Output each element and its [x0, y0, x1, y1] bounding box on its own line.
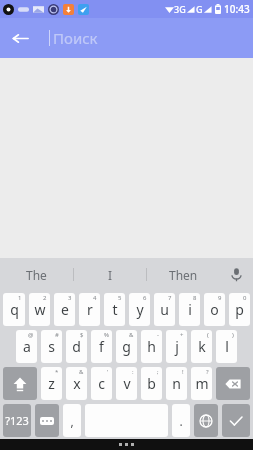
staticText: u [160, 300, 169, 319]
button[interactable]: + [166, 330, 187, 363]
button[interactable]: Change language [194, 404, 218, 437]
button[interactable]: ( [191, 330, 212, 363]
staticText: & [129, 331, 134, 339]
staticText: f [99, 337, 104, 356]
staticText: ?123 [5, 413, 29, 428]
staticText: h [147, 337, 156, 356]
staticText: % [104, 331, 109, 339]
button[interactable]: Delete [216, 367, 250, 400]
staticText: r [87, 300, 93, 319]
staticText: x [73, 374, 81, 393]
staticText: ( [207, 331, 209, 339]
staticText: c [98, 374, 105, 393]
staticText: ? [206, 368, 209, 376]
staticText: 3G [174, 3, 186, 15]
staticText: : [132, 368, 134, 376]
staticText: - [157, 331, 159, 339]
staticText: ) [232, 331, 234, 339]
staticText: The [26, 267, 47, 283]
staticText: m [195, 374, 209, 393]
staticText: 2 [43, 294, 47, 302]
staticText: ; [157, 368, 159, 376]
staticText: g [122, 337, 131, 356]
staticText: w [34, 300, 46, 319]
button[interactable]: 5 [104, 293, 125, 326]
button[interactable]: - [141, 330, 162, 363]
button[interactable]: , [63, 404, 81, 437]
staticText: + [180, 331, 184, 339]
button[interactable]: 7 [154, 293, 175, 326]
button[interactable]: # [41, 330, 62, 363]
staticText: y [136, 300, 144, 319]
staticText: s [48, 337, 55, 356]
button[interactable]: 8 [179, 293, 200, 326]
staticText: ' [107, 368, 109, 376]
button[interactable]: Shift [3, 367, 37, 400]
button[interactable]: Back [0, 18, 40, 58]
staticText: . [179, 413, 183, 429]
staticText: e [61, 300, 69, 319]
staticText: ! [182, 368, 184, 376]
button[interactable]: I [74, 258, 146, 291]
button[interactable]: * [41, 367, 62, 400]
button[interactable]: ? [191, 367, 212, 400]
button[interactable]: 4 [79, 293, 100, 326]
button[interactable]: Emoji [35, 404, 59, 437]
button[interactable]: 3 [54, 293, 75, 326]
button[interactable]: % [91, 330, 112, 363]
staticText: 9 [218, 294, 222, 302]
staticText: 1 [18, 294, 22, 302]
button[interactable]: 1 [3, 293, 25, 326]
staticText: # [55, 331, 59, 339]
staticText: b [147, 374, 156, 393]
staticText: * [55, 368, 59, 376]
button[interactable]: 0 [229, 293, 250, 326]
staticText: p [235, 300, 244, 319]
button[interactable]: : [116, 367, 137, 400]
staticText: @ [28, 331, 34, 339]
staticText: o [210, 300, 219, 319]
staticText: , [70, 413, 74, 429]
staticText: a [23, 337, 31, 356]
staticText: G [196, 3, 203, 15]
button[interactable]: $ [66, 330, 87, 363]
button[interactable]: & [116, 330, 137, 363]
staticText: k [198, 337, 206, 356]
button[interactable]: 9 [204, 293, 225, 326]
button[interactable]: 2 [29, 293, 50, 326]
staticText: Поиск [53, 28, 98, 48]
button[interactable]: 6 [129, 293, 150, 326]
button[interactable]: ' [91, 367, 112, 400]
button[interactable]: ) [216, 330, 237, 363]
button[interactable]: Voice input [219, 258, 253, 291]
staticText: t [112, 300, 118, 319]
staticText: i [188, 300, 192, 319]
button[interactable]: ! [166, 367, 187, 400]
button[interactable]: The [0, 258, 73, 291]
staticText: Then [169, 267, 198, 283]
staticText: 5 [118, 294, 122, 302]
button[interactable]: ; [141, 367, 162, 400]
staticText: v [123, 374, 131, 393]
button[interactable]: . [172, 404, 190, 437]
staticText: n [172, 374, 181, 393]
button[interactable]: Search [222, 404, 250, 437]
staticText: 3 [68, 294, 72, 302]
button[interactable]: @ [16, 330, 37, 363]
staticText: 0 [243, 294, 247, 302]
staticText: z [48, 374, 55, 393]
staticText: 4 [93, 294, 97, 302]
staticText: 6 [143, 294, 147, 302]
staticText: $ [80, 331, 84, 339]
button[interactable]: ?123 [3, 404, 31, 437]
staticText: q [10, 300, 19, 319]
staticText: & [79, 368, 84, 376]
button[interactable]: Then [147, 258, 219, 291]
button[interactable]: & [66, 367, 87, 400]
staticText: I [108, 267, 113, 283]
staticText: j [175, 337, 179, 356]
staticText: l [225, 337, 229, 356]
staticText: 8 [193, 294, 197, 302]
